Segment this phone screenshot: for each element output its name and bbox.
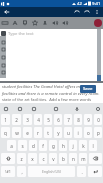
button[interactable]: Save [80,85,96,93]
button[interactable]: y [54,127,62,138]
staticText: 4 [37,117,40,123]
button[interactable]: Text style [10,17,20,29]
button[interactable]: Shift [1,153,15,164]
button[interactable]: 2 [12,114,21,125]
button[interactable]: Favourite [30,17,40,29]
staticText: 3 [26,117,29,123]
button[interactable]: w [12,127,21,138]
staticText: j [72,143,74,149]
staticText: 0 [97,117,100,123]
button[interactable]: x [28,153,37,164]
button[interactable]: Side tool 1 [1,47,5,51]
button[interactable]: 8 [74,114,82,125]
button[interactable]: GIF [16,105,23,112]
button[interactable]: 0 [94,114,102,125]
staticText: v [52,156,55,162]
button[interactable]: d [29,140,37,151]
button[interactable]: Side tool 0 [1,40,5,44]
staticText: y [57,130,60,136]
button[interactable]: 7 [64,114,72,125]
button[interactable]: Attach [20,17,30,29]
button[interactable]: 3 [23,114,32,125]
staticText: 9:41 [92,1,101,7]
button[interactable]: 6 [54,114,62,125]
button[interactable]: s [18,140,27,151]
staticText: g [52,143,55,149]
button[interactable]: l [89,140,97,151]
button[interactable]: 1 [1,114,10,125]
button[interactable]: Record [92,17,103,29]
button[interactable]: 4 [34,114,42,125]
staticText: , [21,169,23,175]
button[interactable]: Voice input [73,105,80,112]
button[interactable]: Enter [88,166,102,177]
staticText: e [26,130,29,136]
button[interactable]: , [17,166,26,177]
button[interactable]: Side tool 2 [1,55,5,59]
button[interactable]: Redo [82,7,92,17]
button[interactable]: English (US) [28,166,75,177]
button[interactable]: v [49,153,57,164]
button[interactable]: Sticker [30,105,37,112]
button[interactable]: Side tool 4 [1,70,5,74]
staticText: u [67,130,70,136]
staticText: n [72,156,75,162]
button[interactable]: b [59,153,67,164]
button[interactable]: Account [40,17,50,29]
button[interactable]: Side tool 3 [1,63,5,67]
button[interactable]: z [17,153,26,164]
button[interactable]: . [77,166,86,177]
staticText: 9 [87,117,90,123]
button[interactable]: Keyboard [0,17,10,29]
staticText: . [81,169,83,175]
button[interactable]: n [69,153,77,164]
staticText: f [42,143,44,149]
button[interactable]: Translate [52,105,59,112]
button[interactable]: o [84,127,92,138]
button[interactable]: 9 [84,114,92,125]
button[interactable]: Backspace [89,153,102,164]
button[interactable]: 5 [44,114,52,125]
button[interactable]: u [64,127,72,138]
button[interactable]: Volume up [60,17,70,29]
staticText: 42 [77,1,82,7]
staticText: 2 [15,117,18,123]
button[interactable]: Settings [94,105,101,112]
button[interactable]: g [49,140,57,151]
button[interactable]: c [39,153,47,164]
button[interactable]: a [7,140,16,151]
staticText: d [32,143,35,149]
staticText: student facilities The Grand Hotel offer… [2,84,101,96]
staticText: 5 [47,117,50,123]
button[interactable]: r [34,127,42,138]
staticText: w [15,130,19,136]
staticText: r [37,130,39,136]
staticText: b [62,156,65,162]
button[interactable]: t [44,127,52,138]
staticText: t [47,130,49,136]
button[interactable]: j [69,140,77,151]
button[interactable]: Back [1,7,12,17]
button[interactable]: e [23,127,32,138]
staticText: m [81,156,86,162]
button[interactable]: Volume [50,17,60,29]
button[interactable]: !#1 [1,166,15,177]
button[interactable]: Clipboard [2,105,9,112]
button[interactable]: More options [92,7,102,17]
button[interactable]: p [94,127,102,138]
button[interactable]: q [1,127,10,138]
button[interactable]: h [59,140,67,151]
button[interactable]: Undo [72,7,82,17]
button[interactable]: f [39,140,47,151]
staticText: z [20,156,23,162]
button[interactable]: k [79,140,87,151]
button[interactable]: m [79,153,87,164]
staticText: 7 [67,117,70,123]
staticText: p [97,130,100,136]
button[interactable]: i [74,127,82,138]
staticText: c [42,156,45,162]
staticText: state of the art facilities. Add a few m… [2,97,92,102]
staticText: o [87,130,90,136]
staticText: x [31,156,34,162]
staticText: Save [83,86,93,92]
